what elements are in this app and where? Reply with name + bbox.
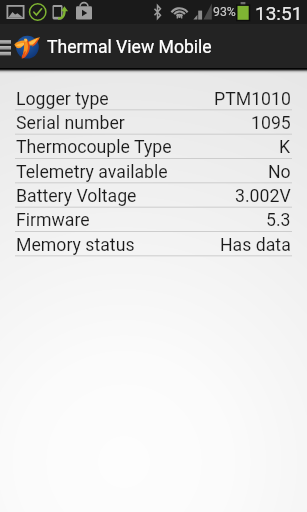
button[interactable]: Memory status bbox=[0, 233, 307, 257]
button[interactable]: Firmware bbox=[0, 208, 307, 232]
staticText: 13:51 bbox=[255, 2, 303, 24]
staticText: K bbox=[279, 137, 291, 158]
staticText: Has data bbox=[220, 235, 291, 256]
staticText: Logger type bbox=[16, 89, 109, 110]
staticText: Telemetry available bbox=[16, 162, 168, 183]
staticText: Battery Voltage bbox=[16, 186, 137, 207]
staticText: 5.3 bbox=[266, 210, 291, 231]
staticText: No bbox=[268, 162, 291, 183]
button[interactable]: Thermocouple Type bbox=[0, 135, 307, 159]
staticText: Serial number bbox=[16, 113, 125, 134]
staticText: PTM1010 bbox=[214, 89, 291, 110]
button[interactable]: Logger type bbox=[0, 87, 307, 111]
button[interactable]: Telemetry available bbox=[0, 160, 307, 184]
staticText: Firmware bbox=[16, 210, 90, 231]
button[interactable]: Serial number bbox=[0, 111, 307, 135]
staticText: 1095 bbox=[251, 113, 291, 134]
staticText: Thermocouple Type bbox=[16, 137, 172, 158]
staticText: 93% bbox=[213, 5, 236, 19]
staticText: Memory status bbox=[16, 235, 135, 256]
staticText: 3.002V bbox=[235, 186, 291, 207]
button[interactable]: Battery Voltage bbox=[0, 184, 307, 208]
staticText: Thermal View Mobile bbox=[47, 37, 212, 58]
button[interactable]: Open navigation drawer bbox=[0, 24, 14, 68]
